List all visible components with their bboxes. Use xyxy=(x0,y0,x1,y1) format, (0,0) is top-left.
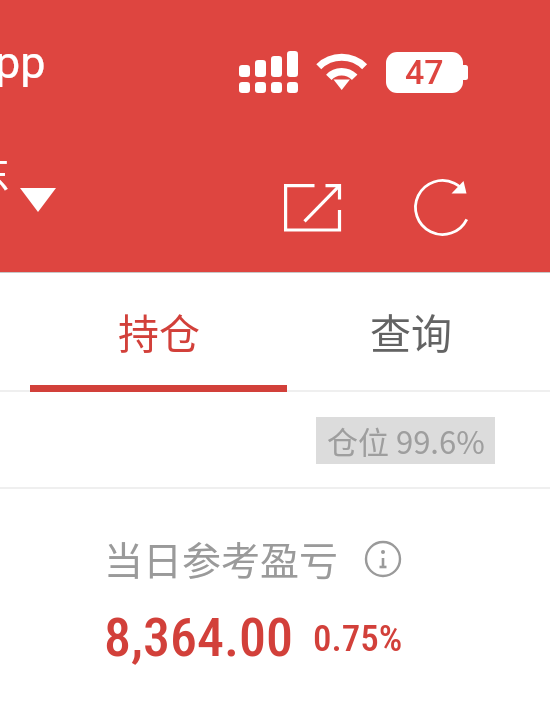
staticText: 0.75% xyxy=(313,617,403,660)
staticText: 8,364.00 xyxy=(104,606,294,669)
staticText: 东 xyxy=(0,143,10,201)
button[interactable]: Open in new window xyxy=(272,174,352,242)
button[interactable]: Refresh xyxy=(405,173,480,243)
button[interactable]: Select account xyxy=(0,143,70,219)
button[interactable]: 仓位 99.6% xyxy=(316,417,495,464)
staticText: 当日参考盈亏 xyxy=(104,530,339,586)
button[interactable]: Info xyxy=(359,535,407,583)
button[interactable]: 持仓 xyxy=(30,272,287,391)
button[interactable]: Expand account list xyxy=(8,176,68,224)
staticText: 持仓 xyxy=(118,301,200,360)
staticText: 查询 xyxy=(370,301,452,360)
staticText: pp xyxy=(0,36,46,89)
button[interactable]: 查询 xyxy=(287,272,534,391)
staticText: 仓位 99.6% xyxy=(327,418,485,463)
staticText: 47 xyxy=(405,52,444,92)
